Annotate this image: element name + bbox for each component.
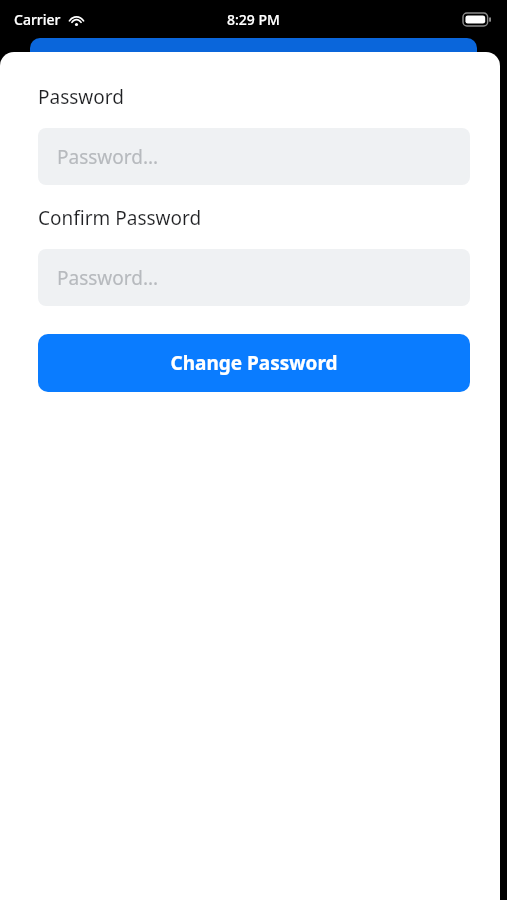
staticText: Confirm Password <box>38 205 202 231</box>
staticText: Carrier <box>14 10 61 29</box>
button[interactable]: Password... <box>38 249 470 306</box>
button[interactable]: Password... <box>38 128 470 185</box>
staticText: 8:29 PM <box>227 10 280 29</box>
staticText: Password <box>38 84 124 110</box>
staticText: Password... <box>57 265 159 291</box>
other: Battery <box>463 13 491 26</box>
staticText: Change Password <box>170 350 338 376</box>
button[interactable]: Change Password <box>38 334 470 392</box>
staticText: Password... <box>57 144 159 170</box>
